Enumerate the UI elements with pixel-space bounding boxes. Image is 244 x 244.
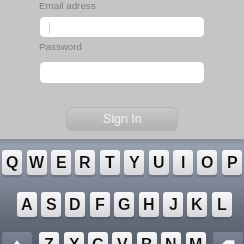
staticText: G	[118, 196, 131, 214]
staticText: P	[227, 154, 238, 172]
button[interactable]: H	[139, 192, 159, 217]
staticText: H	[143, 196, 155, 214]
button[interactable]: Email adress	[39, 0, 96, 11]
staticText: Password	[39, 41, 83, 52]
button[interactable]: K	[187, 192, 207, 217]
staticText: Email adress	[39, 0, 96, 11]
staticText: T	[105, 154, 115, 172]
button[interactable]: L	[212, 192, 232, 217]
button[interactable]: I	[173, 150, 193, 175]
button[interactable]: P	[222, 150, 242, 175]
button[interactable]: G	[114, 192, 134, 217]
button[interactable]: S	[41, 192, 61, 217]
staticText: O	[201, 154, 214, 172]
staticText: M	[189, 236, 203, 244]
button[interactable]: O	[197, 150, 217, 175]
staticText: A	[21, 196, 33, 214]
button[interactable]: X	[64, 232, 84, 244]
button[interactable]: M	[186, 232, 206, 244]
button[interactable]: W	[27, 150, 47, 175]
staticText: Q	[6, 154, 19, 172]
staticText: X	[69, 236, 80, 244]
staticText: Sign In	[103, 112, 142, 126]
button[interactable]: F	[90, 192, 110, 217]
button[interactable]: D	[65, 192, 85, 217]
staticText: W	[29, 154, 45, 172]
button[interactable]: T	[100, 150, 120, 175]
staticText: L	[217, 196, 227, 214]
button[interactable]: A	[17, 192, 37, 217]
button[interactable]: C	[88, 232, 108, 244]
button[interactable]: J	[163, 192, 183, 217]
button[interactable]: Z	[39, 232, 59, 244]
staticText: J	[169, 196, 178, 214]
button[interactable]: Password	[39, 41, 83, 52]
staticText: Z	[44, 236, 54, 244]
staticText: U	[153, 154, 165, 172]
staticText: F	[95, 196, 105, 214]
staticText: E	[56, 154, 67, 172]
button[interactable]: U	[149, 150, 169, 175]
staticText: V	[117, 236, 128, 244]
button[interactable]: Y	[124, 150, 144, 175]
button[interactable]: B	[137, 232, 157, 244]
button[interactable]: Q	[2, 150, 22, 175]
button[interactable]	[40, 17, 204, 37]
staticText: S	[46, 196, 57, 214]
button[interactable]: Backspace	[213, 232, 243, 244]
staticText: I	[181, 154, 186, 172]
staticText: D	[69, 196, 81, 214]
staticText: N	[165, 236, 177, 244]
staticText: B	[141, 236, 153, 244]
button[interactable]	[40, 62, 204, 83]
button[interactable]: Shift	[2, 232, 32, 244]
button[interactable]: Sign In	[66, 107, 178, 131]
button[interactable]: V	[112, 232, 132, 244]
button[interactable]: N	[161, 232, 181, 244]
staticText: K	[191, 196, 203, 214]
staticText: C	[92, 236, 104, 244]
staticText: Y	[129, 154, 140, 172]
button[interactable]: R	[75, 150, 95, 175]
staticText: R	[79, 154, 91, 172]
button[interactable]: E	[51, 150, 71, 175]
